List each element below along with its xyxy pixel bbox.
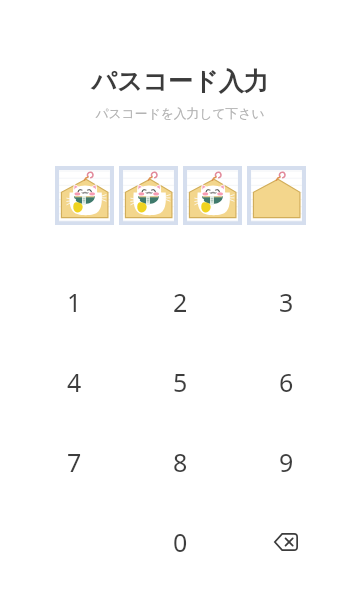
staticText: 5	[173, 365, 188, 399]
staticText: 7	[67, 445, 82, 479]
button[interactable]: 2	[127, 262, 233, 342]
button[interactable]: 7	[21, 422, 127, 502]
staticText: 8	[173, 445, 188, 479]
button[interactable]: 0	[127, 502, 233, 582]
button[interactable]: 3	[233, 262, 339, 342]
staticText: 3	[279, 285, 294, 319]
button[interactable]: Backspace	[233, 502, 339, 582]
staticText: 4	[67, 365, 82, 399]
other: Backspace	[264, 520, 308, 564]
button[interactable]: 1	[21, 262, 127, 342]
button[interactable]: 4	[21, 342, 127, 422]
staticText: 9	[279, 445, 294, 479]
staticText: 1	[67, 285, 82, 319]
staticText: 6	[279, 365, 294, 399]
staticText: 0	[173, 525, 188, 559]
button[interactable]: 8	[127, 422, 233, 502]
staticText: パスコードを入力して下さい	[95, 106, 265, 122]
button[interactable]: 6	[233, 342, 339, 422]
button[interactable]: 5	[127, 342, 233, 422]
button[interactable]: 9	[233, 422, 339, 502]
staticText: 2	[173, 285, 188, 319]
staticText: パスコード入力	[91, 66, 269, 97]
